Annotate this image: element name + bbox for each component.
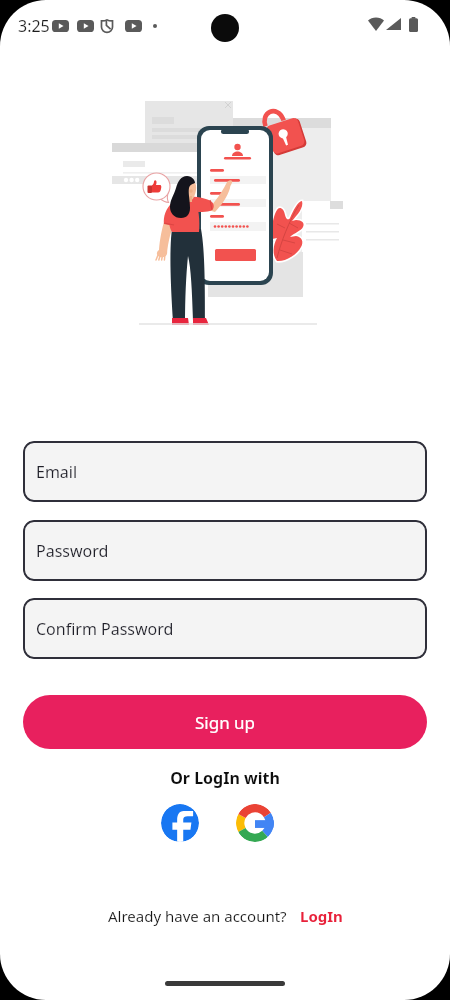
staticText: Password	[36, 540, 109, 562]
button[interactable]: Email	[23, 441, 427, 502]
staticText: LogIn	[300, 906, 343, 926]
button[interactable]: Password	[23, 520, 427, 581]
staticText: Or LogIn with	[0, 767, 450, 789]
button[interactable]: Login with Google	[236, 804, 274, 842]
button[interactable]: LogIn	[300, 906, 343, 926]
button[interactable]: Login with Facebook	[161, 804, 199, 842]
button[interactable]: Confirm Password	[23, 598, 427, 659]
staticText: 3:25	[18, 15, 50, 37]
staticText: Confirm Password	[36, 618, 174, 640]
staticText: Email	[36, 461, 78, 483]
staticText: Sign up	[195, 711, 256, 734]
staticText: Already have an account?	[108, 906, 287, 926]
button[interactable]: Sign up	[23, 695, 427, 749]
